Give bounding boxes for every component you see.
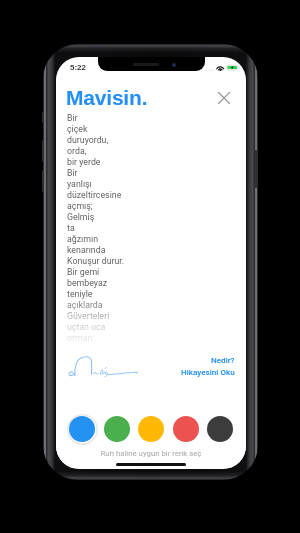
button[interactable]: Close — [215, 89, 233, 107]
button[interactable]: Colour option 2 — [101, 413, 133, 445]
staticText: 5:22 — [70, 63, 87, 72]
staticText: Ruh haline uygun bir renk seç — [56, 449, 246, 458]
button[interactable]: Colour option 1 — [66, 413, 98, 445]
button[interactable]: Colour option 3 — [135, 413, 167, 445]
button[interactable]: Hikayesini Oku — [181, 367, 235, 376]
staticText: Bir çiçek duruyordu, orda, bir yerde Bir… — [67, 113, 125, 343]
button[interactable]: Colour option 4 — [170, 413, 202, 445]
button[interactable]: Colour option 5 — [204, 413, 236, 445]
staticText: Mavisin. — [66, 86, 148, 109]
button[interactable]: Nedir? — [211, 355, 235, 364]
